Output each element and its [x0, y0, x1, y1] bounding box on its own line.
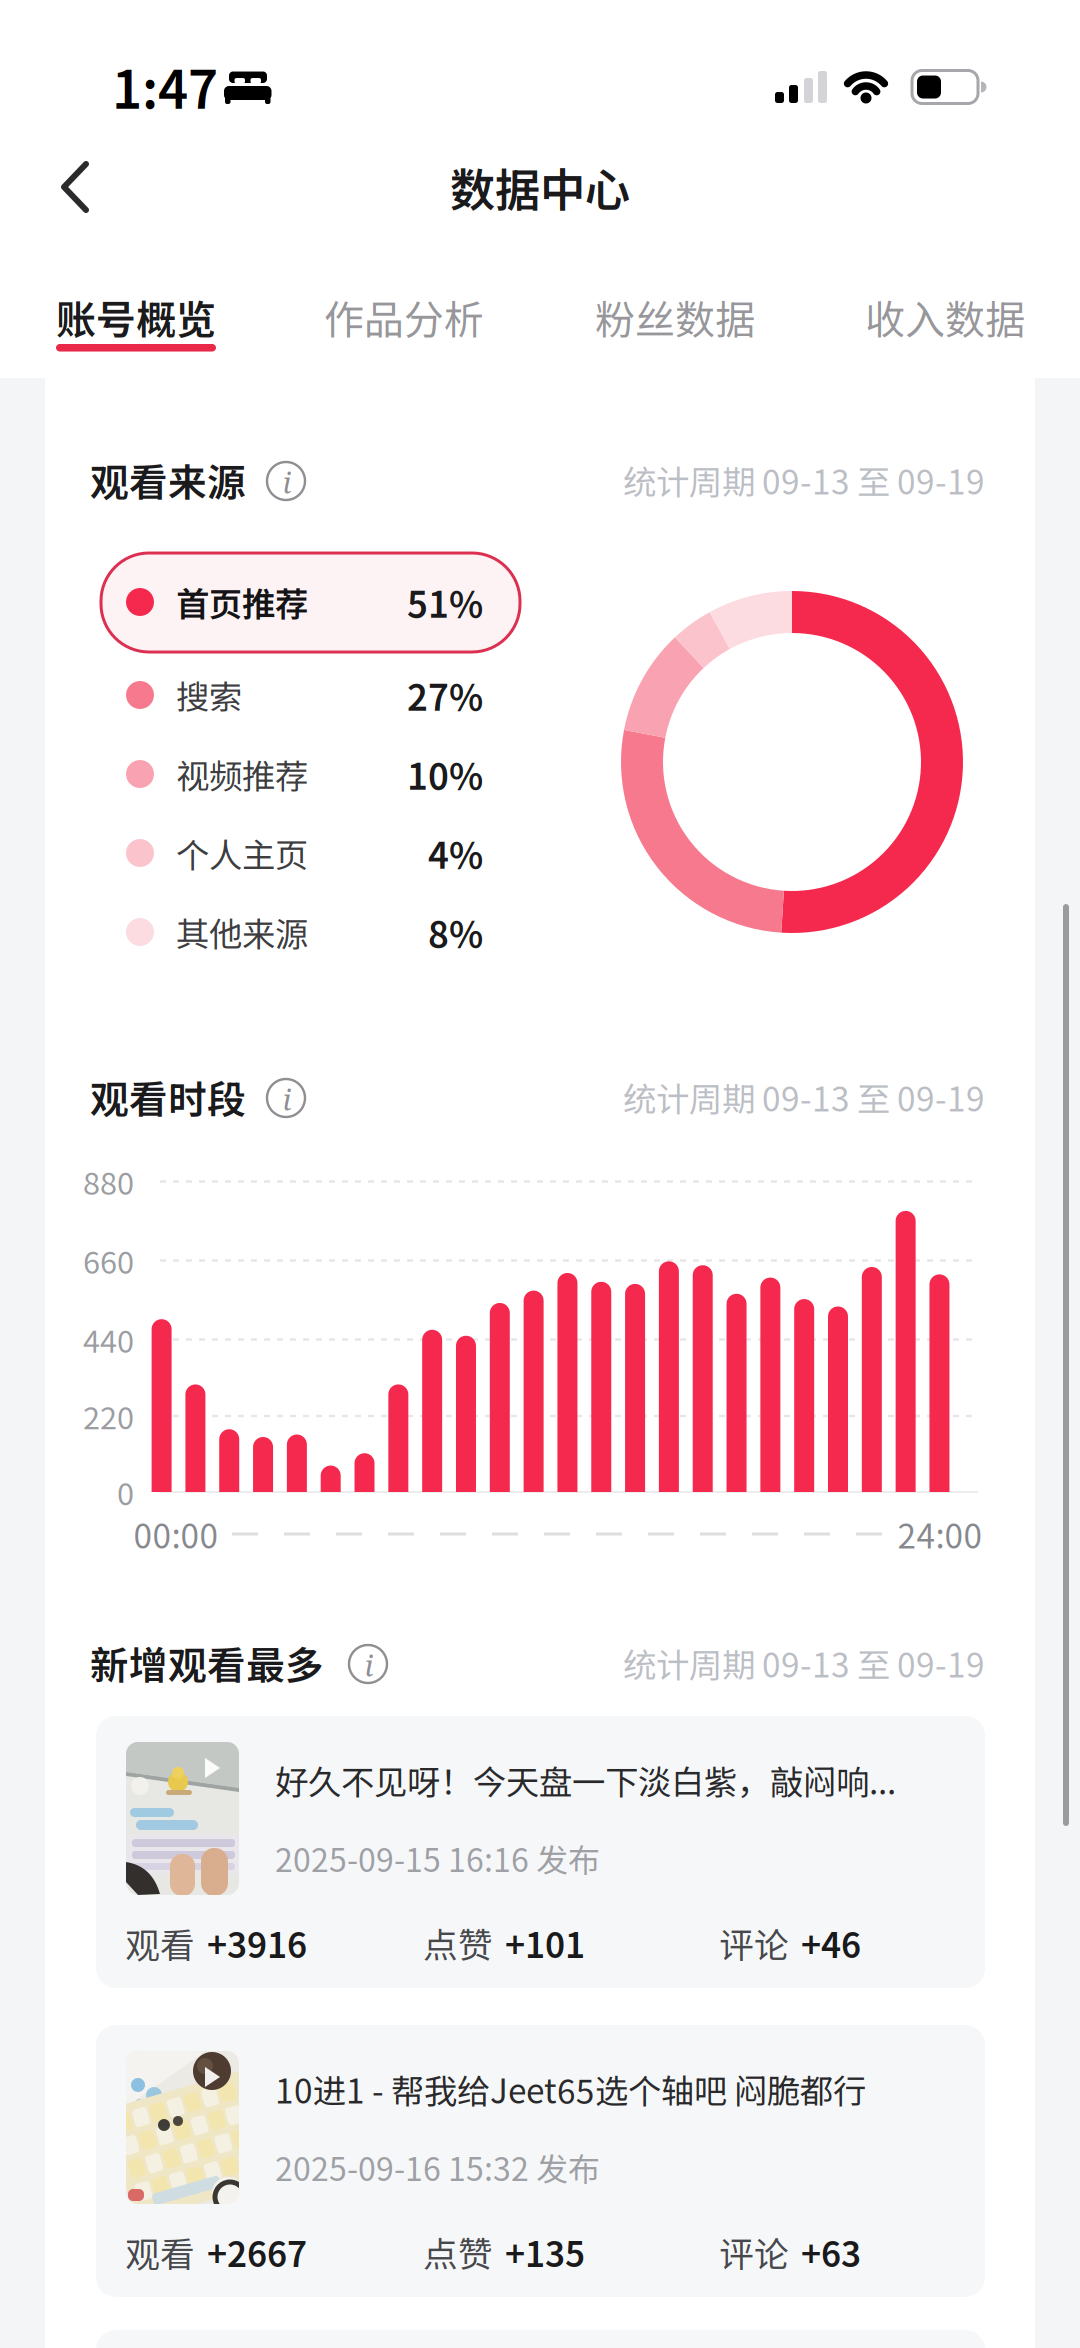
staticText: 评论 — [719, 2227, 789, 2277]
staticText: 账号概览 — [56, 288, 216, 346]
staticText: +101 — [505, 1918, 585, 1968]
staticText: 10% — [407, 748, 483, 800]
staticText: 51% — [407, 576, 483, 628]
staticText: +3916 — [207, 1918, 307, 1968]
staticText: 评论 — [719, 1918, 789, 1968]
staticText: i — [282, 462, 291, 502]
staticText: 视频推荐 — [176, 750, 308, 798]
staticText: 24:00 — [897, 1510, 982, 1558]
staticText: 660 — [83, 1238, 134, 1283]
staticText: 440 — [83, 1317, 134, 1362]
staticText: 8% — [428, 906, 483, 958]
staticText: 点赞 — [423, 1918, 493, 1968]
staticText: 观看来源 — [90, 452, 246, 508]
staticText: 4% — [428, 827, 483, 879]
staticText: 27% — [407, 669, 483, 721]
staticText: +46 — [801, 1918, 861, 1968]
staticText: 粉丝数据 — [595, 288, 755, 346]
staticText: i — [364, 1645, 373, 1685]
staticText: 1:47 — [112, 48, 218, 124]
staticText: 观看时段 — [90, 1069, 246, 1125]
staticText: 作品分析 — [324, 288, 484, 346]
staticText: 10进1 - 帮我给Jeet65选个轴吧 闷脆都行 — [275, 2065, 866, 2113]
staticText: 观看 — [125, 1918, 195, 1968]
staticText: +63 — [801, 2227, 861, 2277]
staticText: 个人主页 — [176, 829, 308, 877]
staticText: 880 — [83, 1159, 134, 1204]
staticText: 收入数据 — [865, 288, 1025, 346]
staticText: 220 — [83, 1394, 134, 1438]
staticText: +135 — [505, 2227, 585, 2277]
staticText: i — [282, 1079, 291, 1119]
staticText: 00:00 — [133, 1510, 218, 1558]
staticText: 点赞 — [423, 2227, 493, 2277]
staticText: 统计周期 09-13 至 09-19 — [623, 1073, 985, 1121]
staticText: 新增观看最多 — [90, 1635, 324, 1691]
staticText: +2667 — [207, 2227, 307, 2277]
staticText: 统计周期 09-13 至 09-19 — [623, 456, 985, 504]
staticText: 0 — [117, 1470, 134, 1514]
staticText: 统计周期 09-13 至 09-19 — [623, 1639, 985, 1687]
staticText: 其他来源 — [176, 908, 308, 956]
staticText: 好久不见呀！今天盘一下淡白紫，敲闷响... — [275, 1756, 896, 1804]
staticText: 观看 — [125, 2227, 195, 2277]
staticText: 数据中心 — [450, 154, 630, 220]
staticText: 2025-09-16 15:32 发布 — [275, 2144, 600, 2190]
staticText: 首页推荐 — [176, 578, 308, 626]
staticText: 2025-09-15 16:16 发布 — [275, 1835, 600, 1881]
staticText: 搜索 — [176, 671, 242, 719]
